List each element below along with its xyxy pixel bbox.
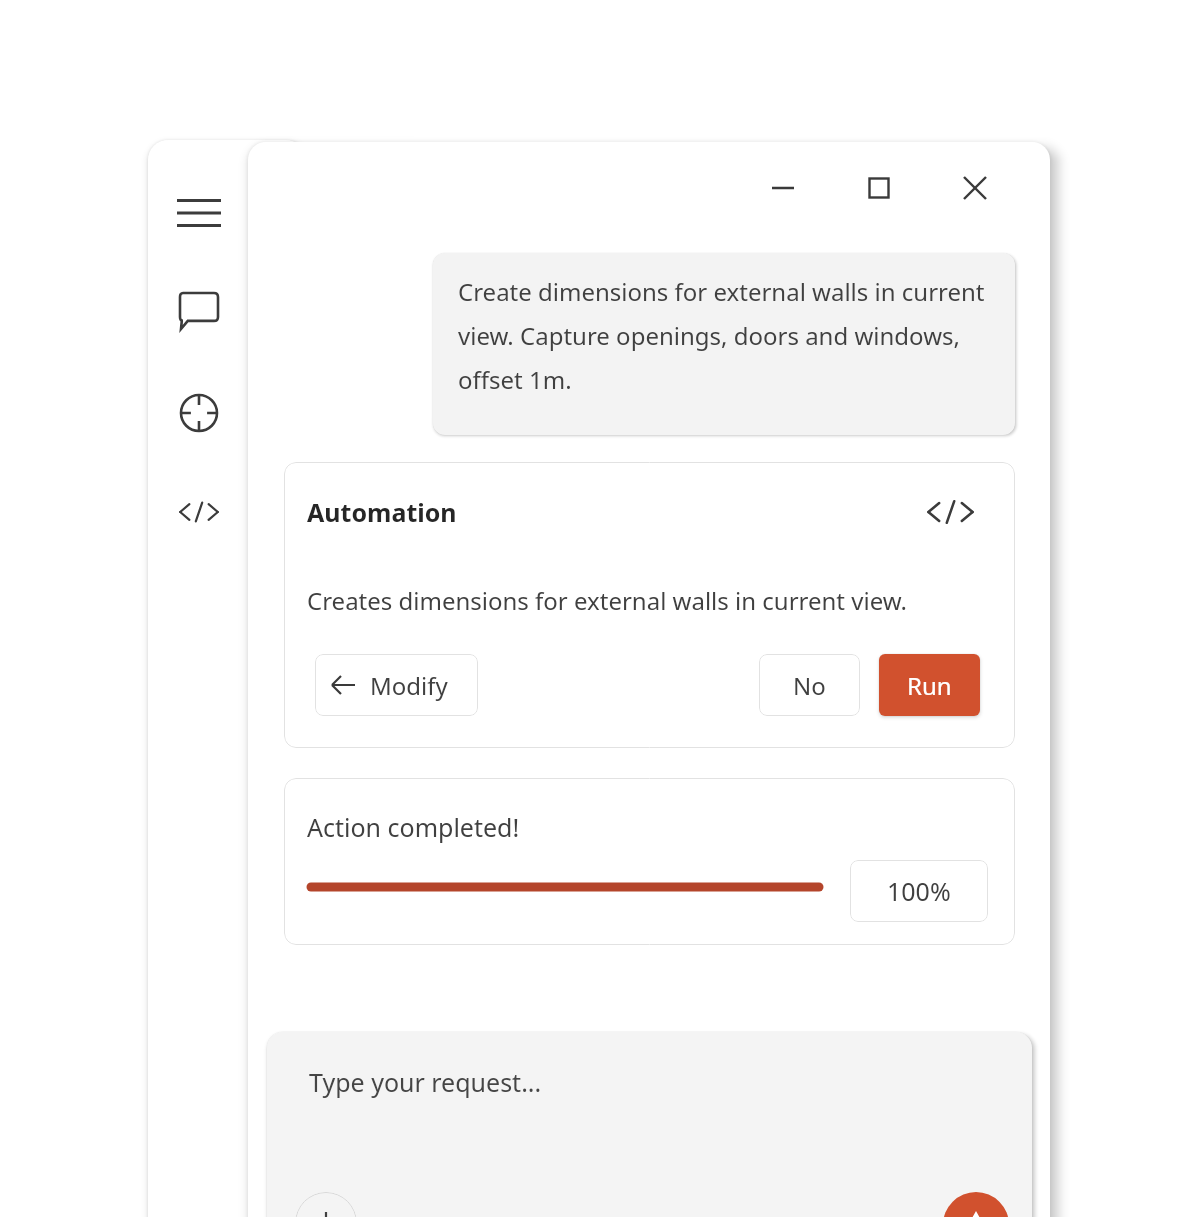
button[interactable]: Menu	[168, 182, 230, 244]
button[interactable]: Chat	[168, 280, 230, 342]
button[interactable]: Code	[168, 481, 230, 543]
button[interactable]: Run	[879, 654, 980, 716]
staticText: Automation	[307, 495, 457, 529]
button[interactable]: Target	[168, 382, 230, 444]
staticText: Create dimensions for external walls in …	[458, 275, 997, 396]
button[interactable]: Minimize	[753, 158, 813, 218]
staticText: Creates dimensions for external walls in…	[307, 584, 908, 617]
button[interactable]: View code	[922, 484, 978, 540]
button[interactable]: Send	[943, 1192, 1009, 1217]
staticText: Action completed!	[307, 810, 520, 844]
staticText: Modify	[370, 669, 448, 702]
staticText: Run	[907, 669, 952, 702]
button[interactable]: Add attachment	[295, 1192, 357, 1217]
button[interactable]: Maximize	[849, 158, 909, 218]
button[interactable]: 100%	[850, 860, 988, 922]
button[interactable]: Close	[945, 158, 1005, 218]
button[interactable]: No	[759, 654, 860, 716]
staticText: 100%	[887, 874, 951, 908]
button[interactable]: Type your request...	[267, 1032, 1032, 1217]
staticText: Type your request...	[309, 1065, 542, 1099]
button[interactable]: Modify	[315, 654, 478, 716]
button[interactable]: Create dimensions for external walls in …	[433, 253, 1015, 435]
staticText: No	[793, 669, 826, 702]
